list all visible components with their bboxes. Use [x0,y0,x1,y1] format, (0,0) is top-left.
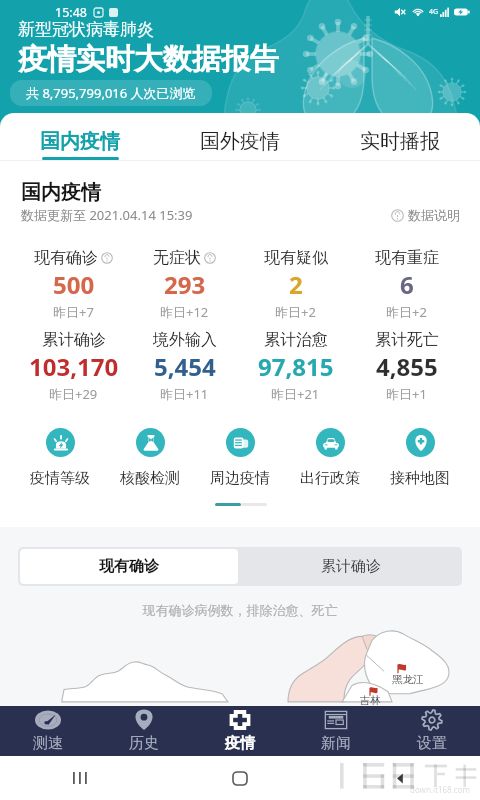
button[interactable]: 设置 [384,706,480,756]
staticText: 现有确诊病例数，排除治愈、死亡 [0,602,480,618]
staticText: 数据说明 [408,207,460,223]
staticText: 4,855 [376,350,438,383]
staticText: 昨日+29 [49,385,98,403]
staticText: 国内疫情 [40,129,120,154]
staticText: 测速 [33,734,63,753]
button[interactable]: 累计确诊 [18,330,129,403]
button[interactable]: 周边疫情 [195,428,285,488]
button[interactable]: 现有确诊 [18,248,129,321]
staticText: 新闻 [321,734,351,753]
button[interactable]: 数据说明 [391,207,460,223]
button[interactable]: 累计治愈 [240,330,351,403]
button[interactable]: 疫情等级 [15,428,105,488]
staticText: 现有确诊 [99,557,159,576]
button[interactable]: 实时播报 [320,113,480,160]
staticText: 4G [429,7,439,17]
staticText: 昨日+2 [386,303,427,321]
button[interactable]: Back [320,756,480,800]
button[interactable]: 现有重症 [351,248,462,321]
staticText: 境外输入 [153,330,217,350]
staticText: 昨日+1 [386,385,427,403]
button[interactable]: 测速 [0,706,96,756]
staticText: 出行政策 [300,469,360,488]
staticText: 设置 [417,734,447,753]
button[interactable]: 现有疑似 [240,248,351,321]
staticText: 国外疫情 [200,129,280,154]
button[interactable]: 无症状 [129,248,240,321]
button[interactable]: 疫情 [192,706,288,756]
staticText: 核酸检测 [120,469,180,488]
button[interactable]: 历史 [96,706,192,756]
button[interactable]: 核酸检测 [105,428,195,488]
button[interactable]: 新闻 [288,706,384,756]
staticText: down.it168.com [410,784,470,795]
staticText: 5,454 [154,350,216,383]
staticText: 现有确诊 [34,248,98,268]
staticText: 293 [164,268,206,301]
staticText: 2 [289,268,303,301]
button[interactable]: 出行政策 [285,428,375,488]
staticText: 国内疫情 [21,180,101,205]
staticText: 历史 [129,734,159,753]
button[interactable]: 接种地图 [375,428,465,488]
staticText: 累计确诊 [321,557,381,576]
staticText: 昨日+21 [271,385,320,403]
button[interactable]: 现有确诊 [20,549,238,584]
staticText: 97,815 [258,350,334,383]
button[interactable]: Home [160,756,320,800]
staticText: 6 [400,268,414,301]
staticText: 昨日+11 [160,385,209,403]
staticText: 昨日+7 [53,303,94,321]
staticText: 疫情 [225,734,255,753]
staticText: 疫情实时大数据报告 [18,41,279,78]
staticText: 接种地图 [390,469,450,488]
staticText: 500 [53,268,95,301]
staticText: 疫情等级 [30,469,90,488]
staticText: 累计确诊 [42,330,106,350]
staticText: 吉林 [360,694,381,706]
button[interactable]: Recent apps [0,756,160,800]
staticText: 现有疑似 [264,248,328,268]
button[interactable]: 国内疫情 [0,113,160,160]
button[interactable]: 累计确诊 [242,549,460,584]
staticText: 昨日+12 [160,303,209,321]
staticText: 15:48 [55,4,87,21]
staticText: 昨日+2 [275,303,316,321]
staticText: 新型冠状病毒肺炎 [18,19,154,40]
staticText: 周边疫情 [210,469,270,488]
button[interactable]: 国外疫情 [160,113,320,160]
staticText: 累计治愈 [264,330,328,350]
staticText: 无症状 [153,248,201,268]
staticText: 实时播报 [360,129,440,154]
staticText: 共 8,795,799,016 人次已浏览 [26,84,196,102]
staticText: 103,170 [29,350,119,383]
staticText: 黑龙江 [392,673,424,686]
staticText: 数据更新至 2021.04.14 15:39 [21,206,193,224]
button[interactable]: 累计死亡 [351,330,462,403]
staticText: 现有重症 [375,248,439,268]
button[interactable]: 境外输入 [129,330,240,403]
staticText: 累计死亡 [375,330,439,350]
